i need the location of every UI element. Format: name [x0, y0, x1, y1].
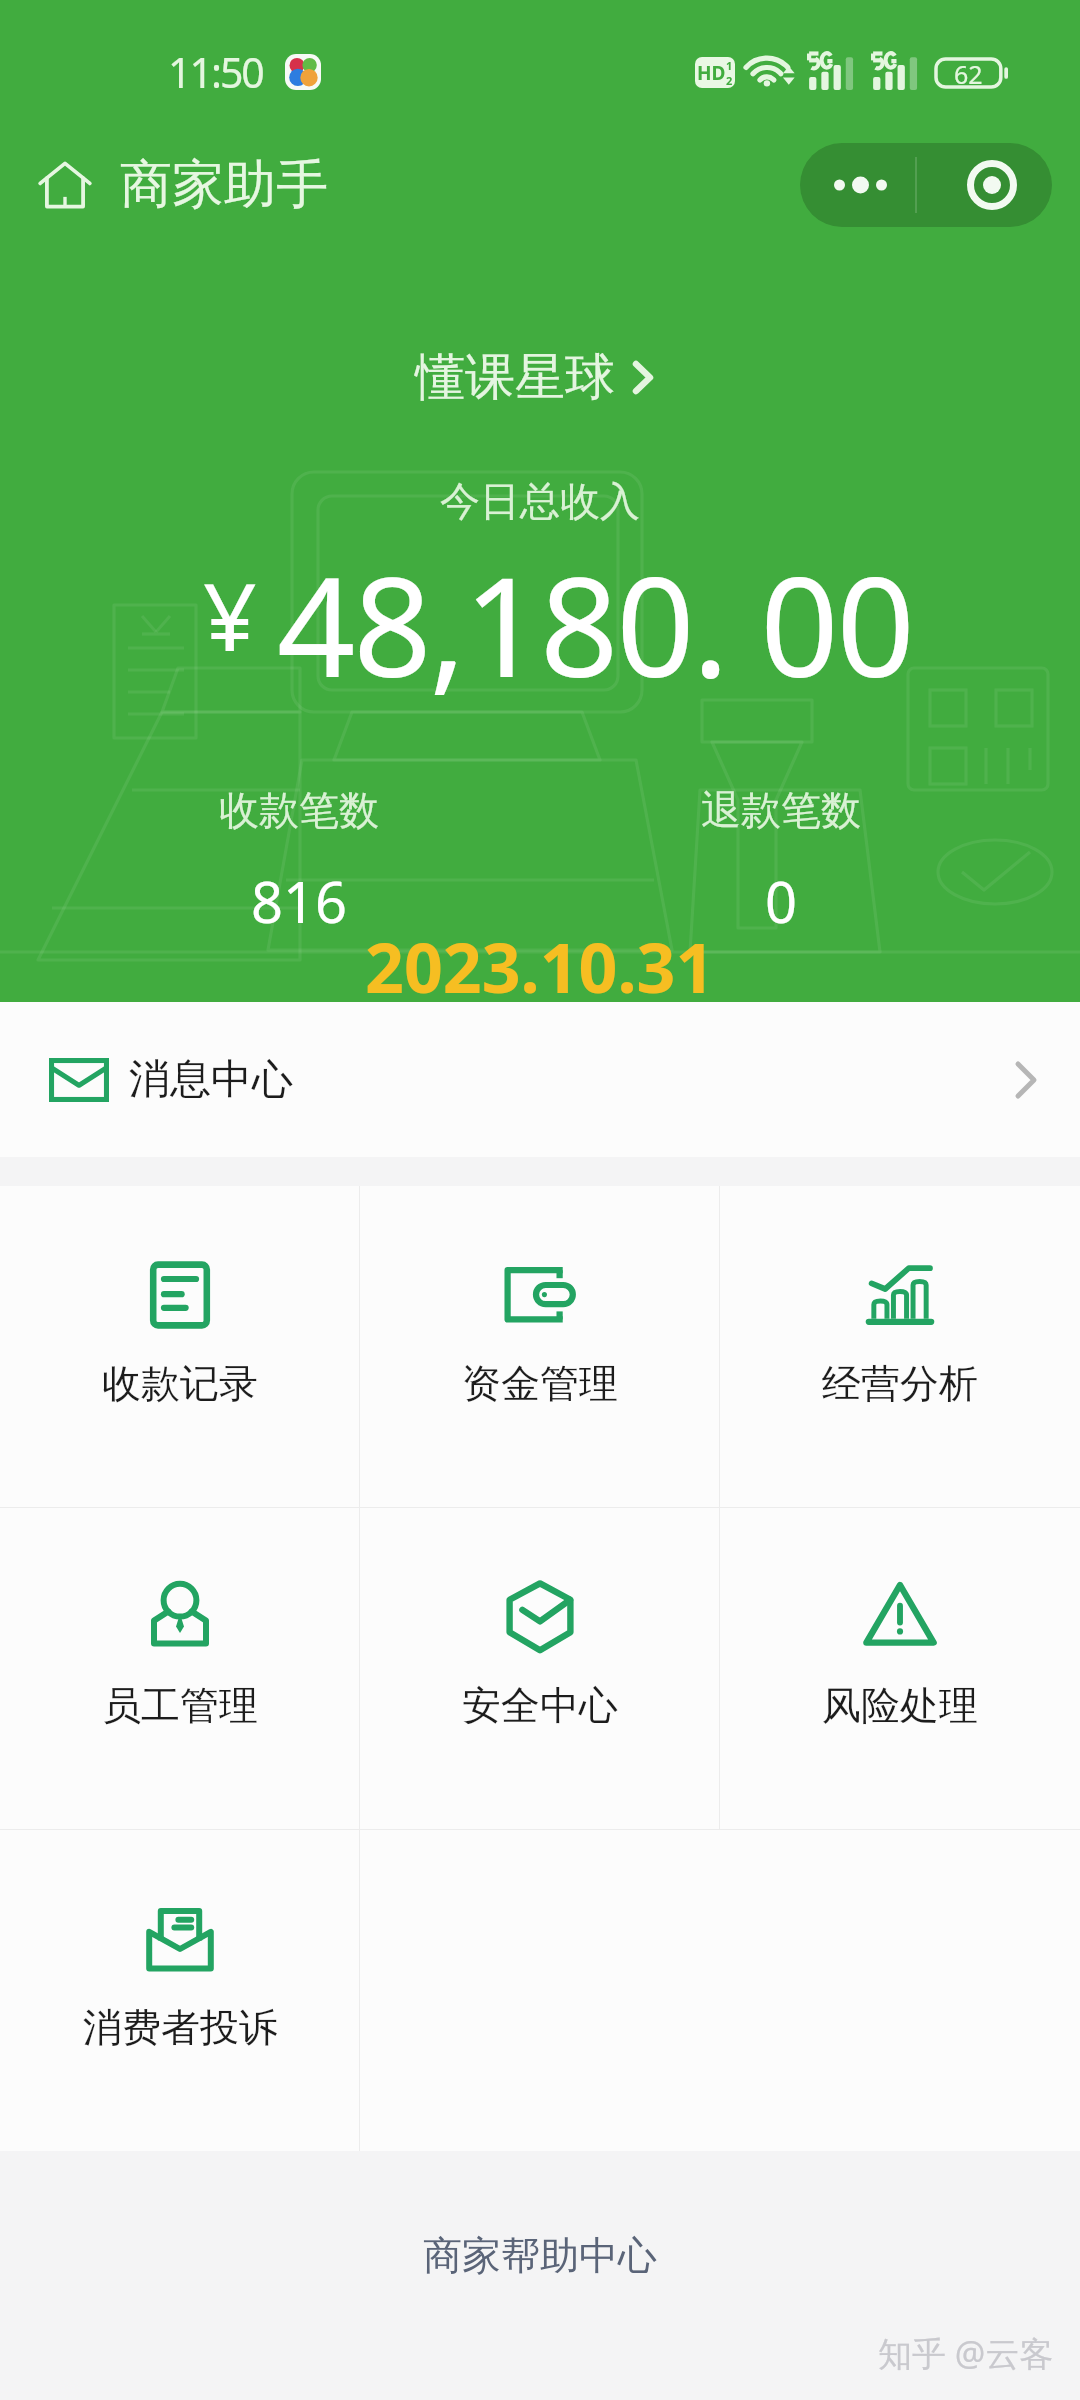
staticText: 经营分析 [822, 1359, 978, 1408]
staticText: 消息中心 [129, 1054, 293, 1106]
button[interactable]: 资金管理 [360, 1186, 720, 1507]
button[interactable]: 安全中心 [360, 1508, 720, 1829]
staticText: 2023.10.31 [365, 920, 715, 1013]
staticText: 收款记录 [102, 1359, 258, 1408]
button[interactable]: 经营分析 [720, 1186, 1080, 1507]
staticText: 员工管理 [102, 1681, 258, 1730]
button[interactable]: 懂课星球 [405, 340, 663, 415]
button[interactable]: 收款记录 [0, 1186, 360, 1507]
staticText: 懂课星球 [415, 346, 615, 409]
staticText: 48,180. 00 [277, 531, 913, 718]
staticText: 退款笔数 [701, 785, 861, 835]
staticText: 商家帮助中心 [423, 2231, 657, 2280]
staticText: 816 [251, 863, 348, 939]
staticText: 消费者投诉 [83, 2003, 278, 2052]
button[interactable]: 消费者投诉 [0, 1830, 360, 2151]
staticText: 知乎 @云客 [878, 2330, 1054, 2376]
staticText: 62 [954, 57, 983, 89]
staticText: 11:50 [168, 44, 263, 100]
button[interactable]: 商家帮助中心 [403, 2221, 677, 2290]
button[interactable]: 员工管理 [0, 1508, 360, 1829]
staticText: ¥ [203, 551, 257, 679]
staticText: 今日总收入 [440, 476, 640, 526]
staticText: 安全中心 [462, 1681, 618, 1730]
staticText: 风险处理 [822, 1681, 978, 1730]
staticText: HD [697, 60, 726, 86]
staticText: 收款笔数 [219, 785, 379, 835]
staticText: 1 [726, 58, 733, 73]
staticText: 2 [726, 73, 733, 88]
staticText: 0 [765, 863, 798, 939]
button[interactable]: 商家助手 [30, 147, 336, 223]
button[interactable]: More options and close [800, 143, 1052, 227]
button[interactable]: 消息中心 [0, 1002, 1080, 1157]
button[interactable]: 风险处理 [720, 1508, 1080, 1829]
staticText: 商家助手 [120, 152, 328, 218]
staticText: 资金管理 [462, 1359, 618, 1408]
